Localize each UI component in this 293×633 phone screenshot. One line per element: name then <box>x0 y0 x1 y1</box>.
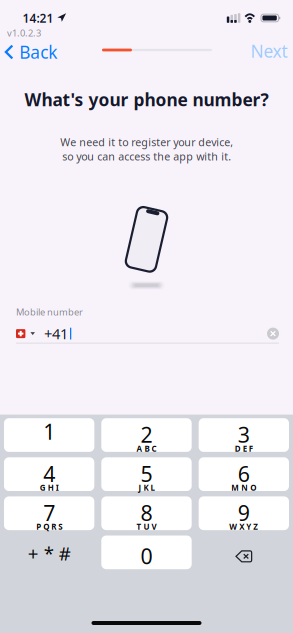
staticText: J K L <box>138 482 154 493</box>
staticText: 5 <box>140 459 152 488</box>
button[interactable]: 5 <box>101 457 192 491</box>
button[interactable]: 0 <box>101 535 192 569</box>
staticText: 4 <box>43 459 55 488</box>
button[interactable]: 9 <box>199 496 289 530</box>
staticText: + * # <box>28 541 71 566</box>
staticText: M N O <box>231 482 256 493</box>
staticText: 3 <box>238 420 250 449</box>
staticText: 14:21 <box>23 10 54 26</box>
staticText: G H I <box>40 482 59 493</box>
button[interactable]: 8 <box>101 496 192 530</box>
staticText: P Q R S <box>36 521 62 532</box>
button[interactable]: 6 <box>199 457 289 491</box>
button[interactable]: Back <box>0 39 63 65</box>
staticText: 2 <box>140 420 152 449</box>
staticText: What's your phone number? <box>24 88 268 111</box>
staticText: 9 <box>238 499 250 527</box>
button[interactable]: + * # <box>4 535 94 569</box>
staticText: A B C <box>136 443 156 454</box>
button[interactable]: 7 <box>4 496 94 530</box>
staticText: W X Y Z <box>229 521 258 532</box>
button[interactable]: 4 <box>4 457 94 491</box>
button[interactable]: 2 <box>101 418 192 452</box>
staticText: 6 <box>238 459 250 488</box>
staticText: We need it to register your device, so y… <box>60 135 233 163</box>
staticText: D E F <box>235 443 253 454</box>
button[interactable]: 3 <box>199 418 289 452</box>
staticText: 8 <box>140 499 152 527</box>
staticText: Back <box>19 40 57 63</box>
staticText: 0 <box>140 542 152 570</box>
button[interactable]: Next <box>242 38 293 64</box>
staticText: Mobile number <box>16 306 83 318</box>
button[interactable]: 1 <box>4 418 94 452</box>
staticText: v1.0.2.3 <box>7 27 41 39</box>
staticText: Next <box>250 39 287 62</box>
button[interactable]: Delete <box>199 535 289 569</box>
staticText: T U V <box>136 521 156 532</box>
staticText: 7 <box>43 499 55 527</box>
staticText: +41 <box>44 324 68 343</box>
staticText: 1 <box>43 417 55 446</box>
